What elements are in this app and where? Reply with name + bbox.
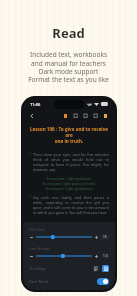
button[interactable]: Back <box>27 111 37 121</box>
button[interactable]: Share <box>81 111 90 120</box>
button[interactable]: Format <box>91 111 100 120</box>
staticText: Then close your eyes, and for five minut… <box>33 152 109 172</box>
button[interactable]: Decrease Line Height <box>29 254 34 259</box>
button[interactable]: Increase Font Size <box>94 235 99 240</box>
staticText: Included text, workbooks and manual for … <box>28 50 109 84</box>
button[interactable]: Line Height slider <box>36 253 92 259</box>
button[interactable]: Home <box>71 111 80 120</box>
staticText: Line Height <box>29 246 50 251</box>
staticText: 16 <box>103 235 107 239</box>
staticText: Lesson 106 : To give and to receive are … <box>29 126 109 144</box>
button[interactable]: Increase Line Height <box>94 254 99 259</box>
staticText: Say each one slowly, and then pause a wh… <box>33 195 109 215</box>
staticText: Font Size <box>29 227 45 232</box>
staticText: Read <box>52 24 85 42</box>
button[interactable]: Dark mode toggle <box>97 278 109 285</box>
button[interactable]: Font Size slider <box>36 234 92 240</box>
button[interactable]: Bookmark <box>61 111 70 120</box>
button[interactable]: Align justify <box>102 265 109 272</box>
button[interactable]: Highlight <box>101 111 110 120</box>
staticText: 1.3 <box>103 254 108 258</box>
staticText: Dark Mode <box>29 279 49 284</box>
button[interactable]: Decrease Font Size <box>29 235 34 240</box>
staticText: To everyone I offer quietness. To everyo… <box>34 176 104 191</box>
staticText: 11:06 <box>30 102 41 107</box>
staticText: Text Align <box>29 266 47 271</box>
button[interactable]: Align left <box>92 265 99 272</box>
